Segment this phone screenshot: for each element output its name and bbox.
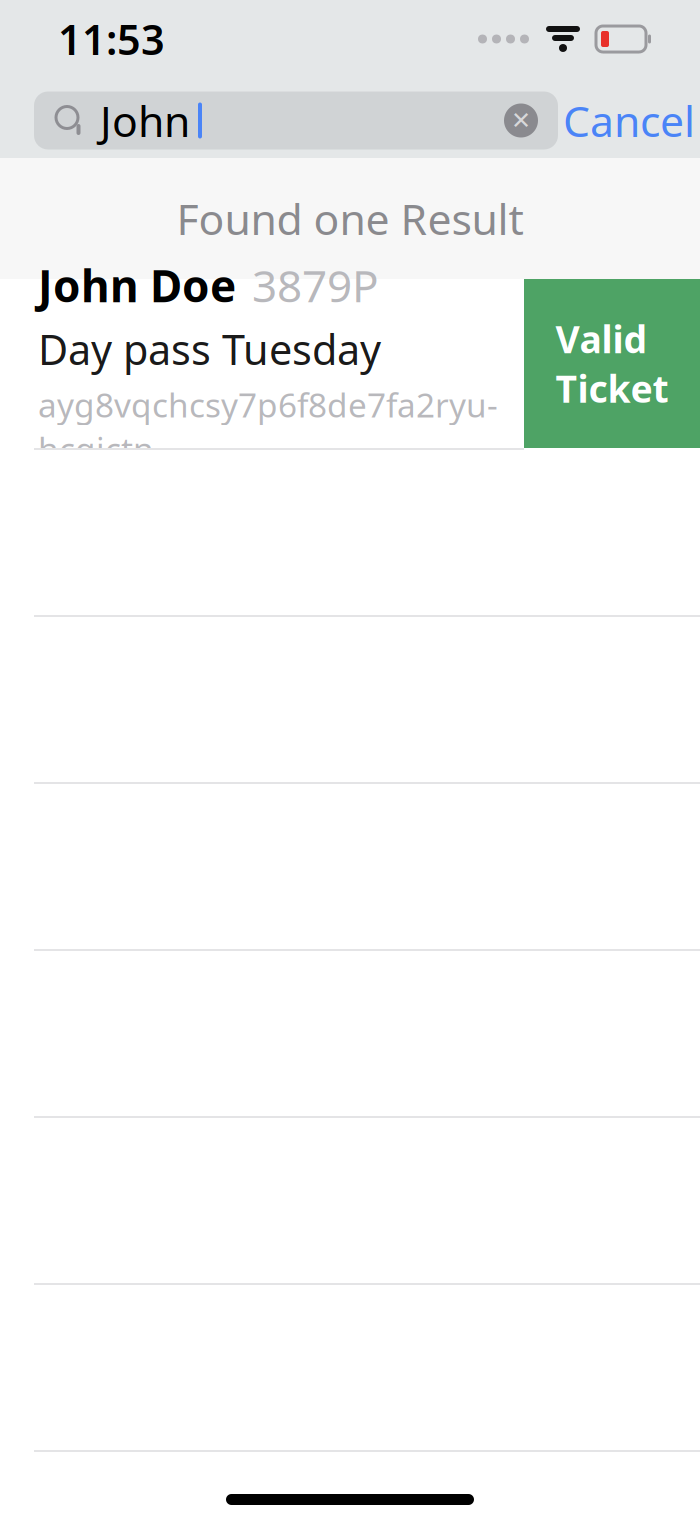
- button[interactable]: John: [34, 91, 558, 149]
- staticText: Valid Ticket: [555, 314, 668, 413]
- staticText: John Doe: [38, 256, 236, 314]
- button[interactable]: John Doe: [0, 279, 700, 450]
- staticText: 11:53: [58, 12, 165, 66]
- staticText: ayg8vqchcsy7p6f8de7fa2ryuhcgjctn: [38, 382, 498, 471]
- staticText: John: [100, 92, 190, 149]
- staticText: ✕: [511, 107, 531, 134]
- staticText: Found one Result: [176, 190, 523, 247]
- staticText: Day pass Tuesday: [38, 321, 381, 376]
- staticText: 3879P: [252, 256, 379, 314]
- button[interactable]: Cancel: [558, 91, 700, 149]
- staticText: Cancel: [563, 92, 695, 149]
